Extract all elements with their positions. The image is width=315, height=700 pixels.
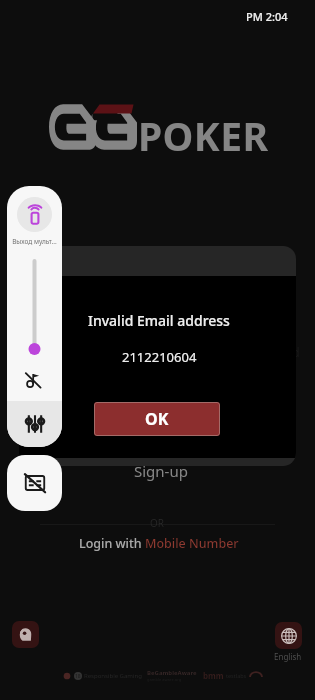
staticText: Выход мульт... <box>7 237 62 246</box>
staticText: Forgot Password <box>205 344 300 360</box>
button[interactable]: Support <box>12 621 39 648</box>
button[interactable]: Language <box>275 622 302 649</box>
button[interactable]: OK <box>94 402 220 436</box>
staticText: English <box>274 651 302 662</box>
staticText: Invalid Email address <box>88 311 230 330</box>
staticText: bmm <box>203 670 224 681</box>
staticText: testlabs <box>226 672 247 679</box>
staticText: PM 2:04 <box>246 9 288 24</box>
button[interactable]: Output switcher <box>17 197 52 232</box>
staticText: Mobile Number <box>145 535 239 552</box>
staticText: Responsible Gaming <box>84 672 142 680</box>
button[interactable]: Sign-up <box>134 461 188 481</box>
button[interactable]: Captions off <box>7 455 62 511</box>
button[interactable]: Login with <box>79 535 239 552</box>
button[interactable]: Settings <box>7 401 62 447</box>
staticText: BeGambleAware <box>147 669 197 677</box>
staticText: Login with <box>79 535 145 552</box>
button[interactable]: Mute <box>24 371 42 389</box>
staticText: 2112210604 <box>122 348 197 366</box>
staticText: POKER <box>138 109 269 162</box>
staticText: OR <box>150 516 165 530</box>
staticText: OK <box>145 408 169 430</box>
staticText: 18 <box>75 673 81 680</box>
button[interactable]: Volume <box>22 254 47 359</box>
